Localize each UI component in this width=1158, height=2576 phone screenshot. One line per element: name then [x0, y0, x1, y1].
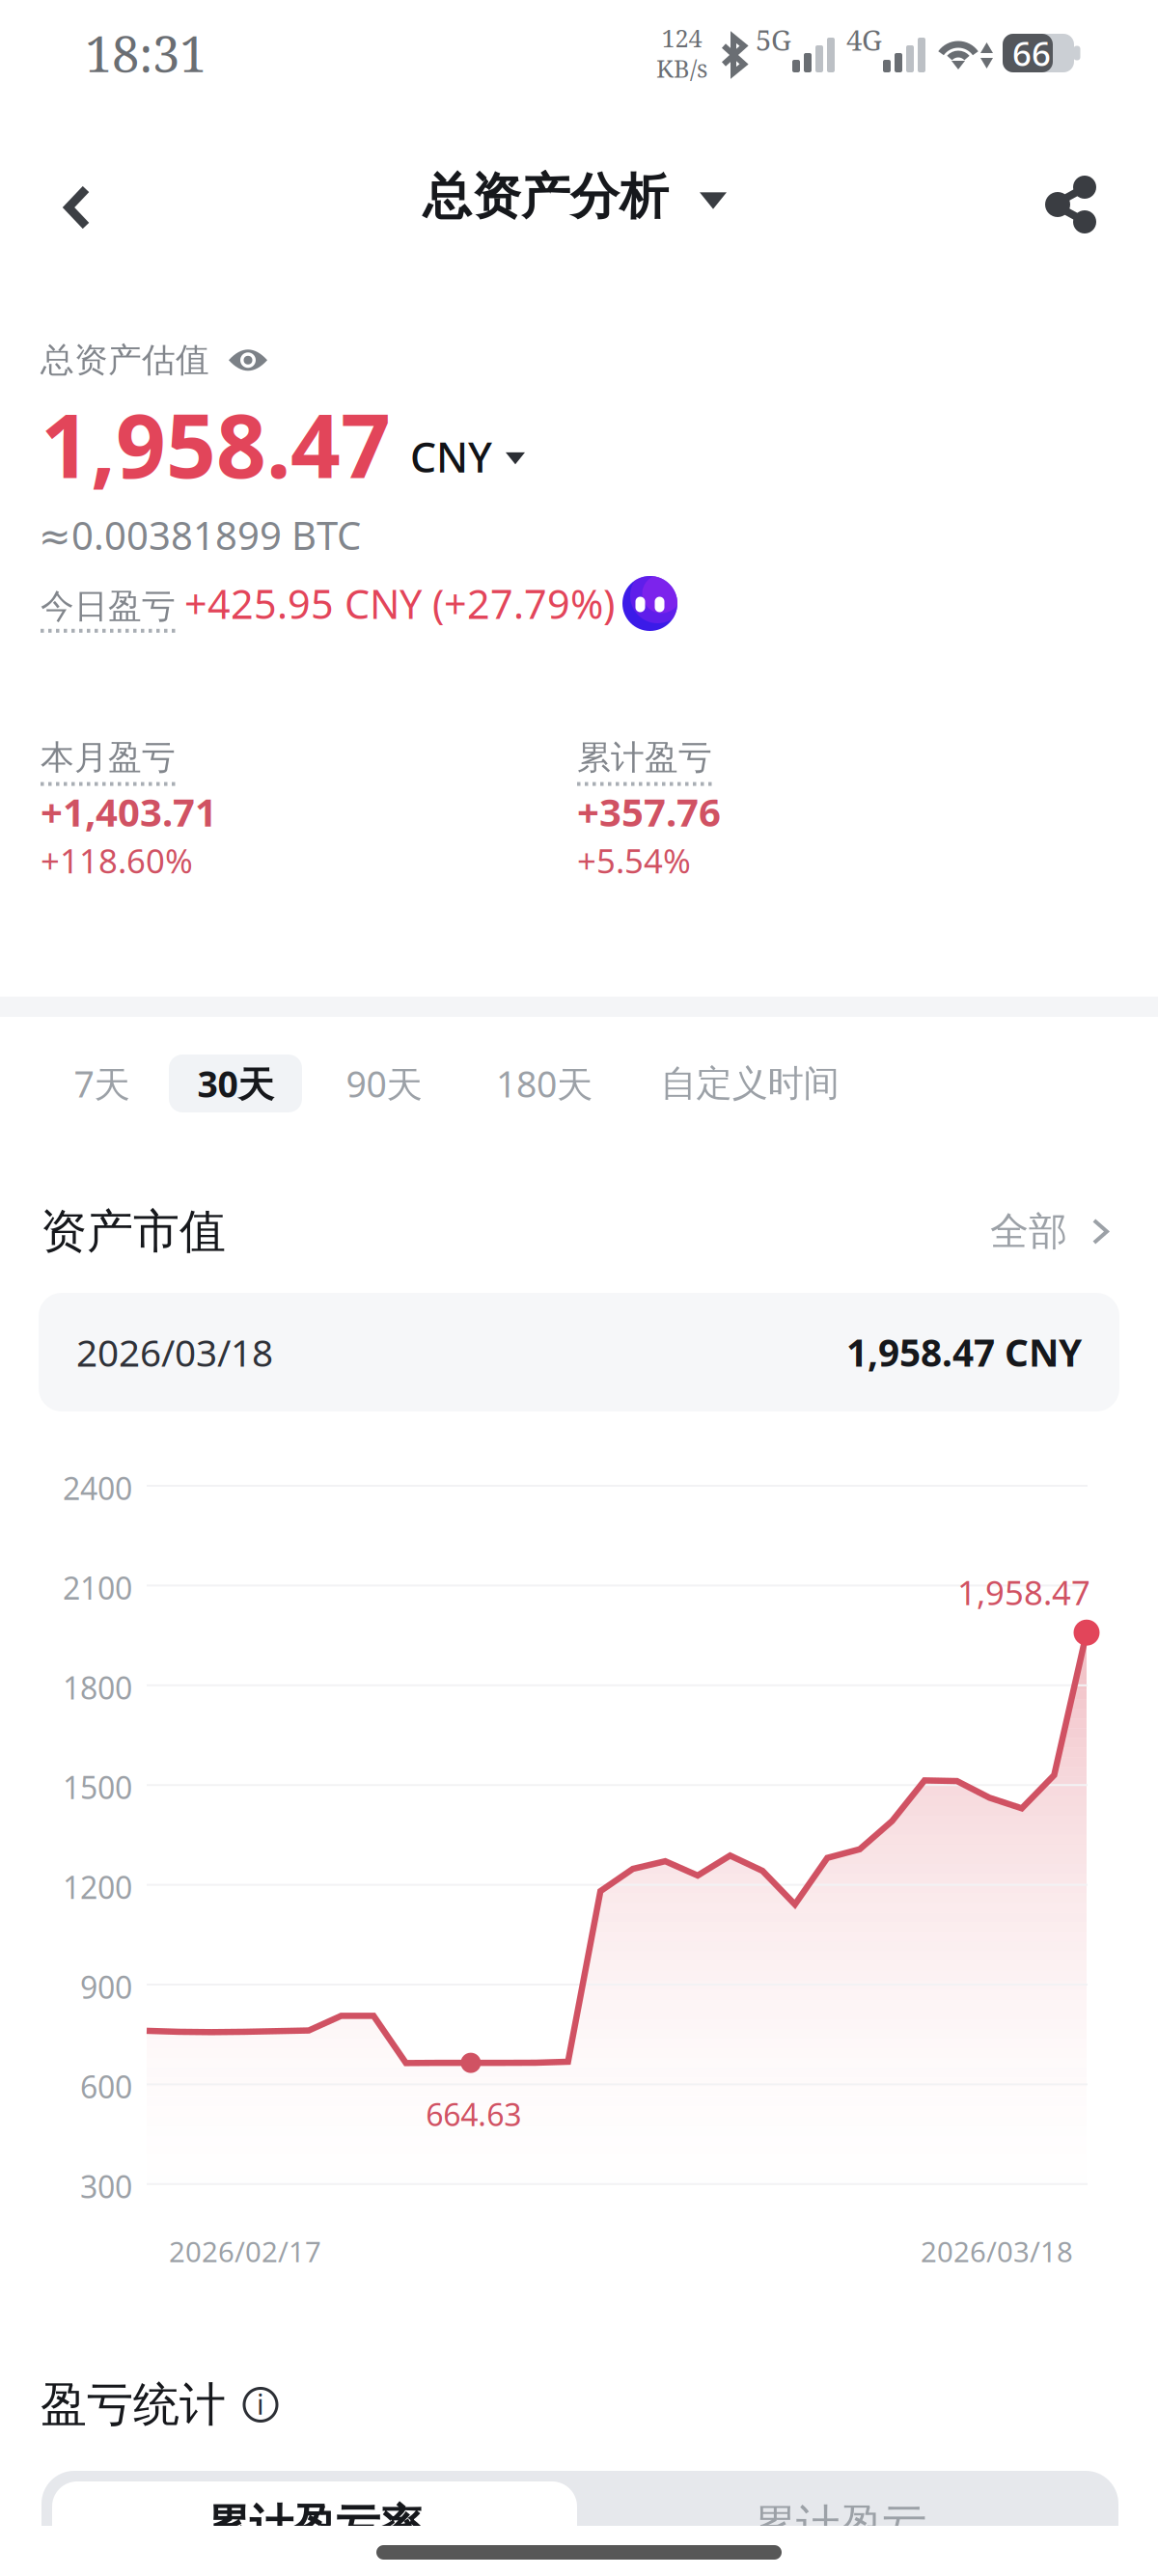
staticText: 2100	[63, 1567, 132, 1608]
staticText: 1800	[63, 1667, 132, 1708]
button[interactable]: 总资产分析	[413, 147, 736, 247]
staticText: 累计盈亏率	[206, 2499, 423, 2553]
staticText: 盈亏统计	[41, 2376, 226, 2433]
staticText: 1500	[63, 1767, 132, 1808]
button[interactable]: 30天	[169, 1055, 302, 1112]
staticText: 总资产分析	[423, 167, 669, 227]
staticText: 全部	[990, 1208, 1067, 1255]
staticText: 1,958.47	[41, 386, 391, 502]
staticText: ≈0.00381899 BTC	[39, 509, 361, 561]
button[interactable]: Share	[1019, 154, 1123, 255]
staticText: 664.63	[426, 2094, 521, 2135]
button[interactable]: 全部	[990, 1208, 1110, 1255]
staticText: 2026/02/17	[169, 2233, 321, 2270]
staticText: 资产市值	[41, 1203, 226, 1260]
staticText: 2026/03/18	[921, 2233, 1073, 2270]
staticText: 90天	[346, 1060, 422, 1107]
button[interactable]: 累计盈亏	[577, 2481, 1102, 2570]
staticText: 1200	[63, 1866, 132, 1907]
button[interactable]: 7天	[35, 1055, 169, 1112]
button[interactable]: 自定义时间	[622, 1055, 877, 1112]
staticText: 66	[1012, 31, 1051, 75]
staticText: 1,958.47	[957, 1570, 1090, 1614]
staticText: 今日盈亏	[41, 586, 176, 627]
staticText: +357.76	[577, 786, 721, 837]
button[interactable]: Hide balance	[227, 346, 269, 375]
staticText: 4G	[846, 20, 882, 59]
staticText: 180天	[496, 1060, 593, 1107]
staticText: 自定义时间	[661, 1061, 839, 1106]
staticText: 本月盈亏	[41, 737, 176, 778]
staticText: 18:31	[85, 20, 207, 86]
staticText: 5G	[756, 20, 791, 59]
staticText: 2400	[63, 1467, 132, 1508]
staticText: 300	[80, 2166, 132, 2207]
staticText: 900	[80, 1966, 132, 2007]
staticText: 1,958.47 CNY	[846, 1327, 1082, 1377]
button[interactable]: 累计盈亏率	[52, 2481, 577, 2570]
staticText: 600	[80, 2066, 132, 2107]
staticText: 7天	[74, 1060, 130, 1107]
staticText: +5.54%	[577, 838, 691, 882]
button[interactable]: Back	[24, 157, 128, 258]
staticText: +118.60%	[41, 838, 193, 882]
staticText: 累计盈亏	[753, 2499, 926, 2553]
staticText: 30天	[197, 1060, 274, 1107]
staticText: i	[257, 2385, 264, 2423]
staticText: 124	[662, 21, 702, 55]
staticText: 累计盈亏	[577, 737, 712, 778]
staticText: KB/s	[656, 52, 707, 85]
staticText: 总资产估值	[41, 340, 209, 381]
staticText: CNY	[410, 429, 492, 484]
button[interactable]: 180天	[466, 1055, 622, 1112]
staticText: +1,403.71	[41, 786, 217, 837]
button[interactable]: 90天	[302, 1055, 466, 1112]
staticText: 2026/03/18	[76, 1327, 273, 1377]
staticText: +425.95 CNY (+27.79%)	[184, 577, 615, 630]
button[interactable]: CNY	[410, 447, 525, 502]
